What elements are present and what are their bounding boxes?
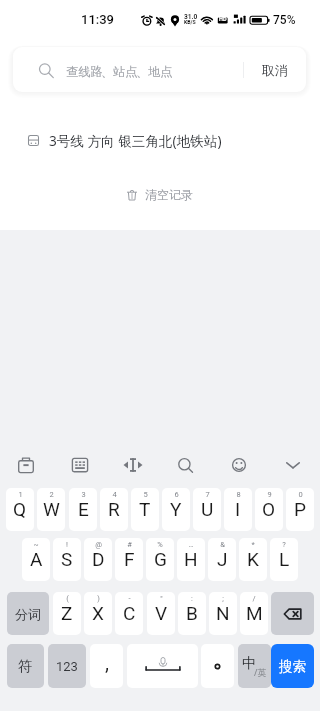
staticText: 6 — [174, 490, 179, 499]
button[interactable]: Search — [167, 447, 203, 483]
staticText: X — [92, 602, 104, 624]
staticText: V — [155, 602, 168, 624]
staticText: 7 — [205, 490, 210, 499]
staticText: # — [127, 540, 132, 549]
button[interactable]: - — [115, 592, 143, 635]
button[interactable]: 清空记录 — [117, 181, 203, 208]
staticText: ; — [222, 594, 224, 603]
staticText: 分词 — [15, 606, 41, 622]
staticText: S — [61, 548, 73, 570]
button[interactable]: Period — [201, 644, 234, 688]
staticText: HD — [219, 16, 227, 23]
staticText: C — [123, 602, 136, 624]
staticText: 123 — [56, 659, 78, 674]
staticText: 站点 — [113, 64, 138, 79]
staticText: 3号线 方向 银三角北(地铁站) — [49, 131, 222, 150]
staticText: % — [157, 540, 163, 549]
staticText: 地点 — [148, 64, 173, 79]
staticText: KB/S — [184, 19, 196, 25]
staticText: M — [246, 602, 263, 624]
button[interactable]: 0 — [286, 488, 314, 531]
button[interactable]: 6 — [162, 488, 190, 531]
staticText: /英 — [254, 666, 267, 678]
staticText: Y — [170, 498, 182, 520]
button[interactable]: 8 — [224, 488, 252, 531]
staticText: N — [216, 602, 230, 624]
button[interactable]: Keyboard layout — [62, 447, 98, 483]
staticText: 0 — [298, 490, 303, 499]
staticText: A — [30, 548, 43, 570]
staticText: ~ — [33, 540, 39, 549]
staticText: 、 — [136, 64, 149, 79]
staticText: / — [252, 594, 256, 603]
staticText: 3 — [81, 490, 86, 499]
staticText: 中 — [242, 654, 257, 672]
staticText: & — [220, 540, 225, 549]
button[interactable]: Hide keyboard — [275, 447, 311, 483]
staticText: D — [92, 548, 105, 570]
button[interactable]: 9 — [255, 488, 283, 531]
button[interactable]: 3号线 方向 银三角北(地铁站) — [0, 121, 320, 159]
button[interactable]: @ — [84, 538, 112, 581]
staticText: ) — [97, 594, 100, 603]
staticText: Q — [13, 498, 27, 520]
staticText: T — [139, 498, 151, 520]
staticText: 8 — [236, 490, 241, 499]
staticText: 取消 — [262, 62, 288, 78]
button[interactable]: Space / voice input — [127, 644, 198, 688]
button[interactable]: 取消 — [244, 47, 306, 92]
button[interactable]: 5 — [131, 488, 159, 531]
button[interactable]: Switch Chinese English — [238, 644, 271, 688]
button[interactable]: ! — [53, 538, 81, 581]
staticText: ? — [282, 540, 286, 549]
button[interactable]: 分词 — [7, 592, 49, 635]
button[interactable]: / — [240, 592, 268, 635]
button[interactable]: Emoji — [221, 447, 257, 483]
staticText: W — [43, 498, 60, 520]
staticText: R — [108, 498, 120, 520]
staticText: 4 — [112, 490, 117, 499]
button[interactable]: 7 — [193, 488, 221, 531]
staticText: * — [251, 540, 255, 549]
button[interactable]: 符 — [7, 644, 44, 688]
button[interactable]: ( — [53, 592, 81, 635]
button[interactable]: ~ — [22, 538, 50, 581]
button[interactable]: 查线路 — [13, 47, 306, 92]
button[interactable]: & — [208, 538, 236, 581]
staticText: 搜索 — [279, 658, 306, 675]
button[interactable]: 搜索 — [271, 644, 314, 688]
staticText: 75% — [273, 13, 296, 27]
button[interactable]: 1 — [6, 488, 34, 531]
staticText: ! — [66, 540, 68, 549]
button[interactable]: Comma — [90, 644, 123, 688]
staticText: … — [188, 540, 194, 549]
staticText: J — [217, 548, 228, 570]
staticText: 、 — [101, 64, 114, 79]
staticText: B — [186, 602, 198, 624]
button[interactable]: % — [146, 538, 174, 581]
button[interactable]: 3 — [69, 488, 97, 531]
staticText: 1 — [18, 490, 23, 499]
button[interactable]: Backspace — [271, 592, 314, 635]
button[interactable]: * — [239, 538, 267, 581]
button[interactable]: Clipboard — [8, 447, 44, 483]
staticText: O — [262, 498, 276, 520]
staticText: 查线路 — [66, 64, 103, 79]
staticText: H — [184, 548, 198, 570]
button[interactable]: ) — [84, 592, 112, 635]
button[interactable]: ; — [209, 592, 237, 635]
staticText: 11:39 — [81, 12, 114, 27]
button[interactable]: ? — [270, 538, 298, 581]
staticText: - — [128, 594, 131, 603]
button[interactable]: : — [178, 592, 206, 635]
button[interactable]: " — [147, 592, 175, 635]
button[interactable]: Move cursor — [115, 447, 151, 483]
staticText: 符 — [18, 657, 33, 675]
staticText: , — [105, 651, 109, 674]
button[interactable]: # — [115, 538, 143, 581]
staticText: 5 — [143, 490, 148, 499]
button[interactable]: … — [177, 538, 205, 581]
button[interactable]: 4 — [100, 488, 128, 531]
button[interactable]: 2 — [37, 488, 65, 531]
button[interactable]: 123 — [48, 644, 86, 688]
